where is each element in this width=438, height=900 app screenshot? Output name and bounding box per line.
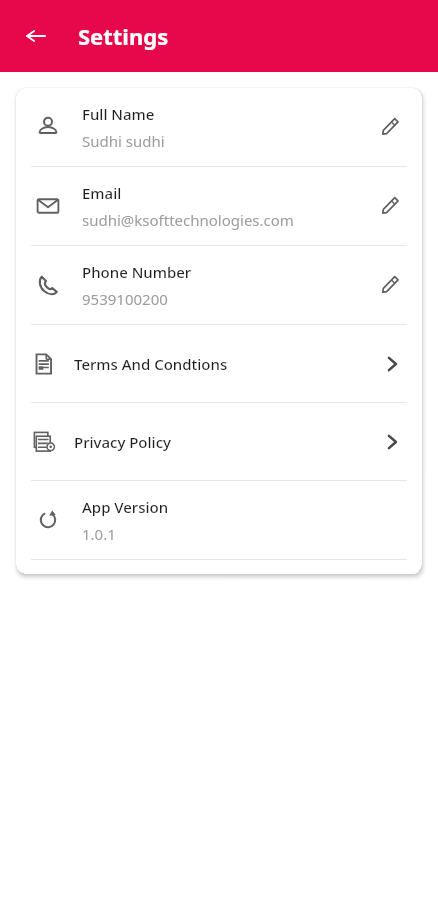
- button[interactable]: Edit full name: [370, 107, 410, 147]
- button[interactable]: App Version: [16, 481, 422, 559]
- staticText: Email: [82, 183, 122, 203]
- staticText: App Version: [82, 497, 169, 517]
- button[interactable]: Phone Number: [16, 246, 422, 324]
- staticText: 9539100200: [82, 289, 168, 309]
- button[interactable]: Edit phone number: [370, 265, 410, 305]
- button[interactable]: Back: [14, 14, 58, 58]
- staticText: sudhi@ksofttechnologies.com: [82, 210, 294, 230]
- button[interactable]: Privacy Policy: [16, 403, 422, 480]
- staticText: Full Name: [82, 104, 155, 124]
- button[interactable]: Email: [16, 167, 422, 245]
- staticText: Privacy Policy: [74, 432, 374, 452]
- staticText: Settings: [78, 21, 169, 51]
- button[interactable]: Edit email: [370, 186, 410, 226]
- staticText: Phone Number: [82, 262, 192, 282]
- staticText: 1.0.1: [82, 524, 116, 544]
- staticText: Terms And Condtions: [74, 354, 374, 374]
- staticText: Sudhi sudhi: [82, 131, 165, 151]
- button[interactable]: Full Name: [16, 88, 422, 166]
- button[interactable]: Terms And Condtions: [16, 325, 422, 402]
